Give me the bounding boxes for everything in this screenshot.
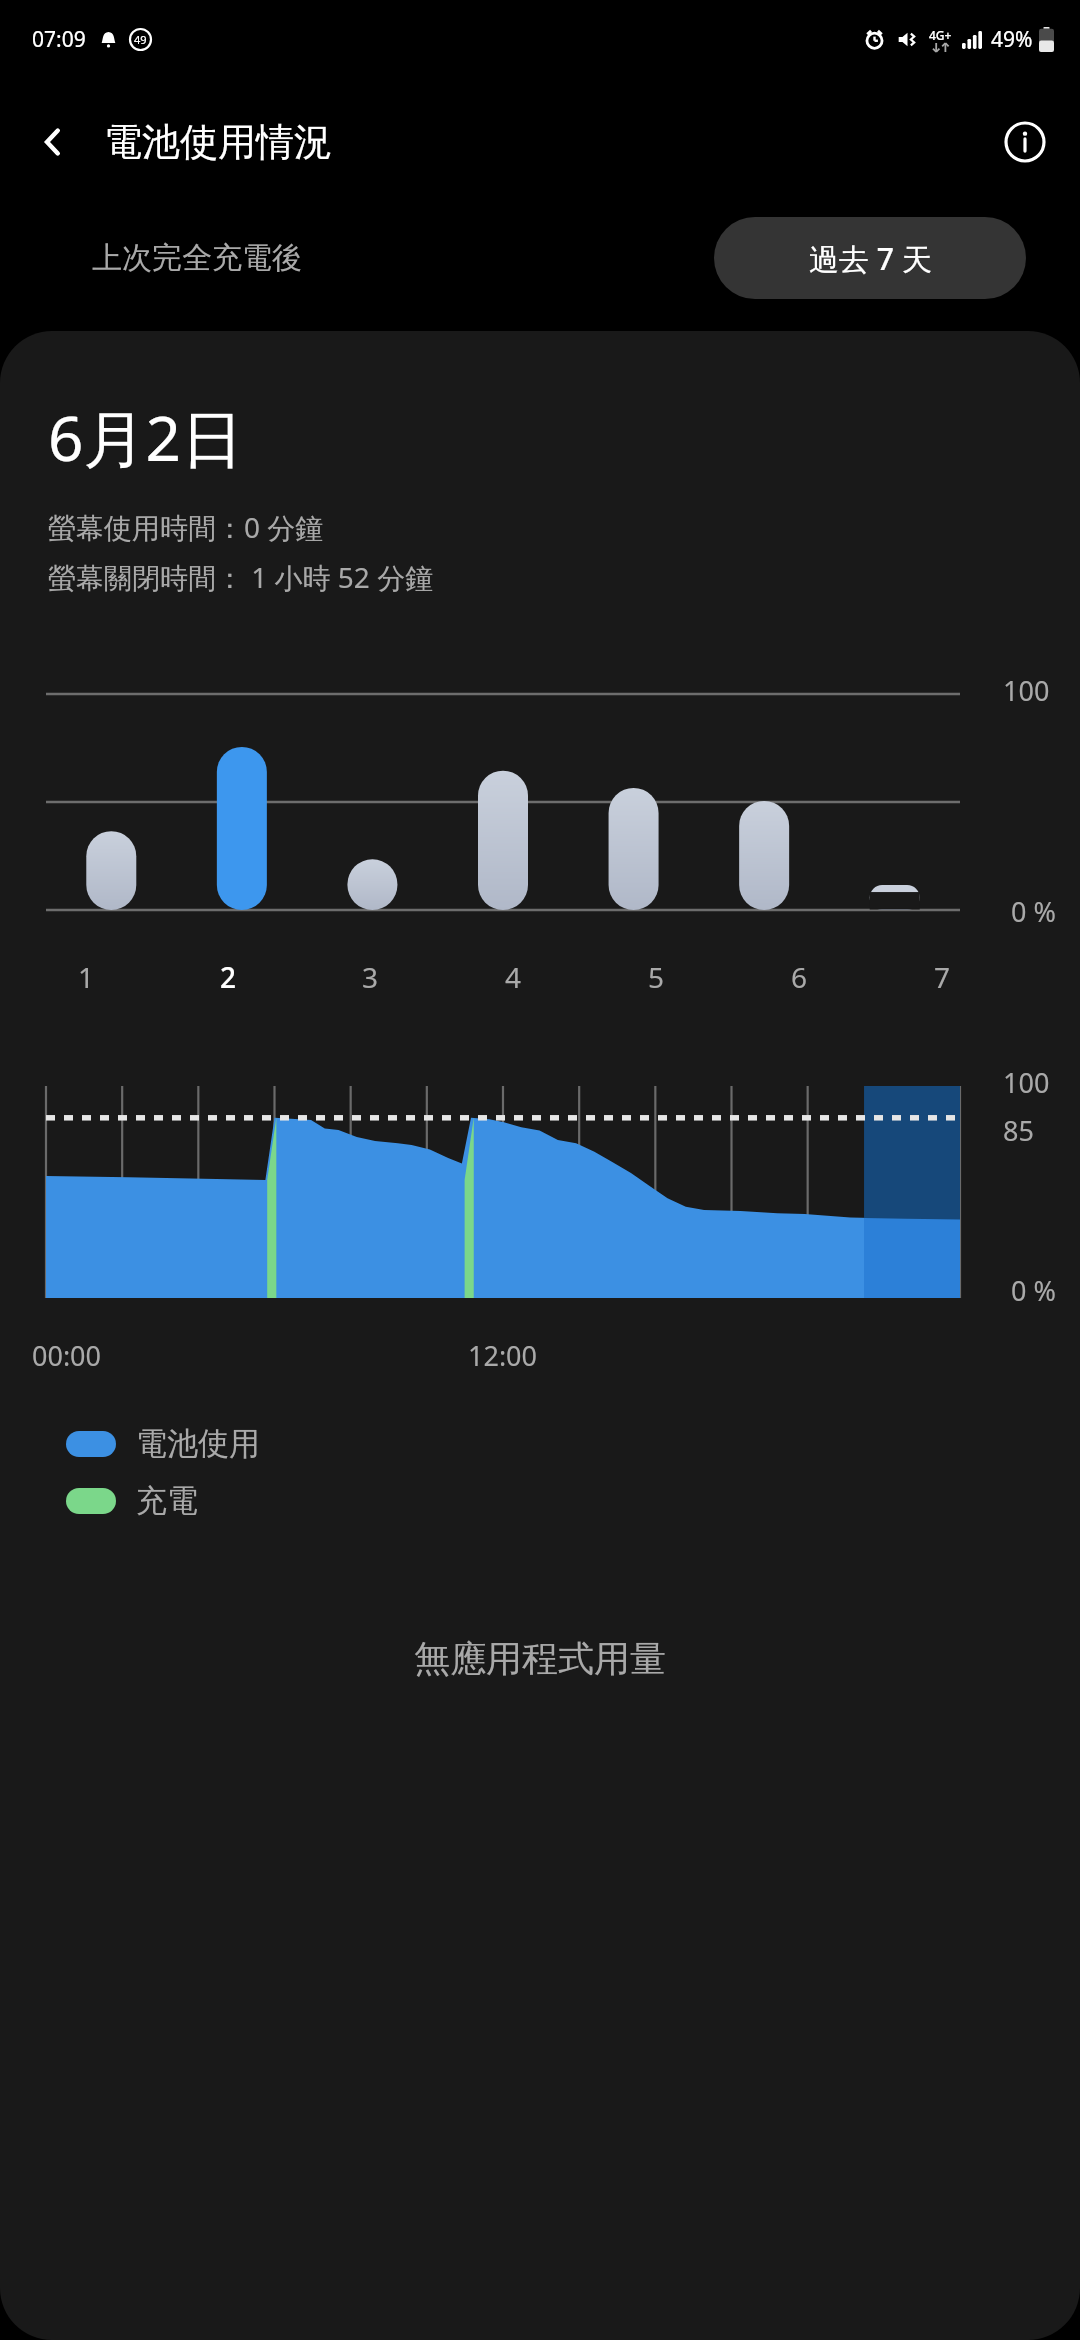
staticText: 4G+ — [929, 27, 952, 43]
button[interactable]: 上次完全充電後 — [76, 227, 318, 289]
staticText: 螢幕關閉時間： 1 小時 52 分鐘 — [48, 558, 434, 596]
button[interactable]: Information — [992, 109, 1058, 175]
staticText: 49% — [991, 25, 1033, 54]
button[interactable]: 充電 — [66, 1481, 198, 1520]
staticText: 電池使用 — [136, 1424, 260, 1463]
staticText: 0 % — [1011, 1272, 1056, 1309]
staticText: 6月2日 — [48, 395, 243, 480]
staticText: 0 % — [1011, 893, 1056, 930]
staticText: 2 — [220, 958, 237, 996]
staticText: 螢幕使用時間：0 分鐘 — [48, 508, 324, 546]
staticText: 85 — [1003, 1112, 1034, 1149]
button[interactable]: Back — [22, 111, 84, 173]
staticText: 無應用程式用量 — [0, 1636, 1080, 1681]
staticText: 1 — [78, 958, 95, 996]
staticText: 49 — [134, 32, 147, 47]
staticText: 7 — [934, 958, 951, 996]
button[interactable]: 電池使用 — [66, 1424, 260, 1463]
staticText: 過去 7 天 — [809, 238, 932, 279]
staticText: 07:09 — [32, 25, 86, 54]
staticText: 上次完全充電後 — [92, 239, 302, 277]
staticText: 100 — [1003, 1064, 1050, 1101]
staticText: 電池使用情況 — [104, 118, 332, 166]
staticText: 4 — [505, 958, 522, 996]
staticText: 5 — [648, 958, 665, 996]
staticText: 12:00 — [468, 1337, 538, 1374]
staticText: 充電 — [136, 1481, 198, 1520]
staticText: 100 — [1003, 672, 1050, 709]
staticText: 3 — [362, 958, 379, 996]
staticText: 6 — [791, 958, 808, 996]
staticText: 00:00 — [32, 1337, 102, 1374]
button[interactable]: 過去 7 天 — [714, 217, 1026, 299]
